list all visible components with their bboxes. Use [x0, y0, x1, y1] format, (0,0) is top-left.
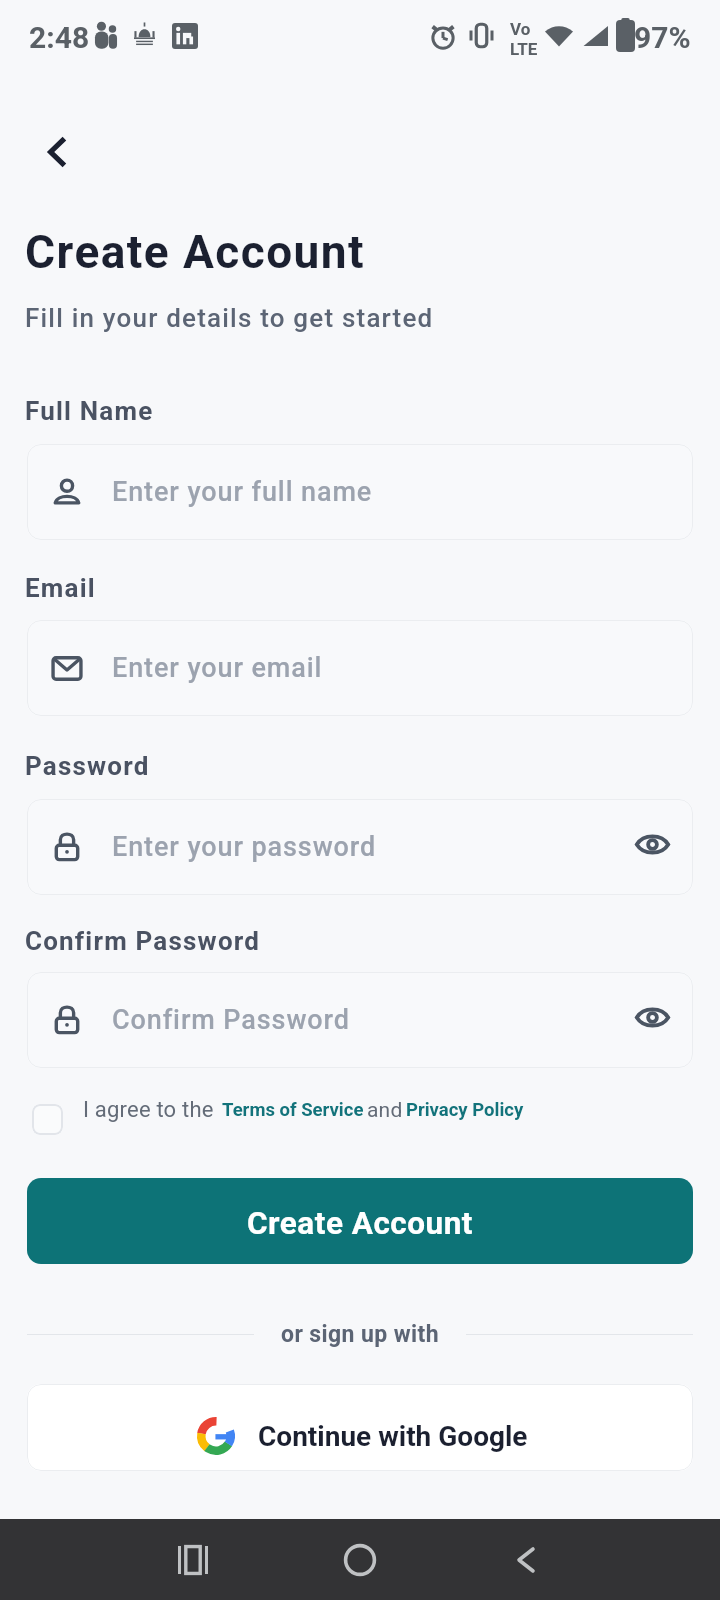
- staticText: LTE: [510, 39, 538, 55]
- button[interactable]: Recent apps: [153, 1532, 233, 1587]
- staticText: Full Name: [25, 396, 154, 426]
- staticText: Create Account: [247, 1205, 473, 1242]
- button[interactable]: Enter your full name: [27, 444, 693, 540]
- staticText: Enter your email: [112, 652, 323, 684]
- button[interactable]: Enter your email: [27, 620, 693, 716]
- staticText: Fill in your details to get started: [25, 303, 434, 333]
- button[interactable]: Show password: [623, 816, 685, 878]
- staticText: Enter your full name: [112, 476, 373, 508]
- button[interactable]: Create Account: [27, 1178, 693, 1264]
- staticText: Create Account: [25, 225, 366, 279]
- staticText: Confirm Password: [112, 1004, 350, 1036]
- staticText: 97%: [634, 20, 691, 55]
- button[interactable]: Show password: [623, 989, 685, 1051]
- staticText: Continue with Google: [258, 1420, 528, 1453]
- button[interactable]: Enter your password: [27, 799, 693, 895]
- button[interactable]: Back: [486, 1532, 566, 1587]
- button[interactable]: Terms of Service: [222, 1099, 364, 1121]
- button[interactable]: Back: [24, 119, 90, 185]
- staticText: Vo: [510, 19, 531, 39]
- staticText: Password: [25, 751, 150, 781]
- staticText: 2:48: [29, 20, 90, 55]
- button[interactable]: Confirm Password: [27, 972, 693, 1068]
- staticText: I agree to the: [83, 1097, 214, 1123]
- staticText: Confirm Password: [25, 926, 261, 956]
- button[interactable]: Privacy Policy: [406, 1099, 524, 1121]
- button[interactable]: Home: [320, 1532, 400, 1587]
- button[interactable]: I agree to the Terms of Service and Priv…: [32, 1104, 63, 1135]
- staticText: Email: [25, 573, 96, 603]
- button[interactable]: Continue with Google: [27, 1384, 693, 1471]
- staticText: and: [367, 1098, 403, 1123]
- staticText: Enter your password: [112, 831, 377, 863]
- staticText: or sign up with: [281, 1321, 439, 1348]
